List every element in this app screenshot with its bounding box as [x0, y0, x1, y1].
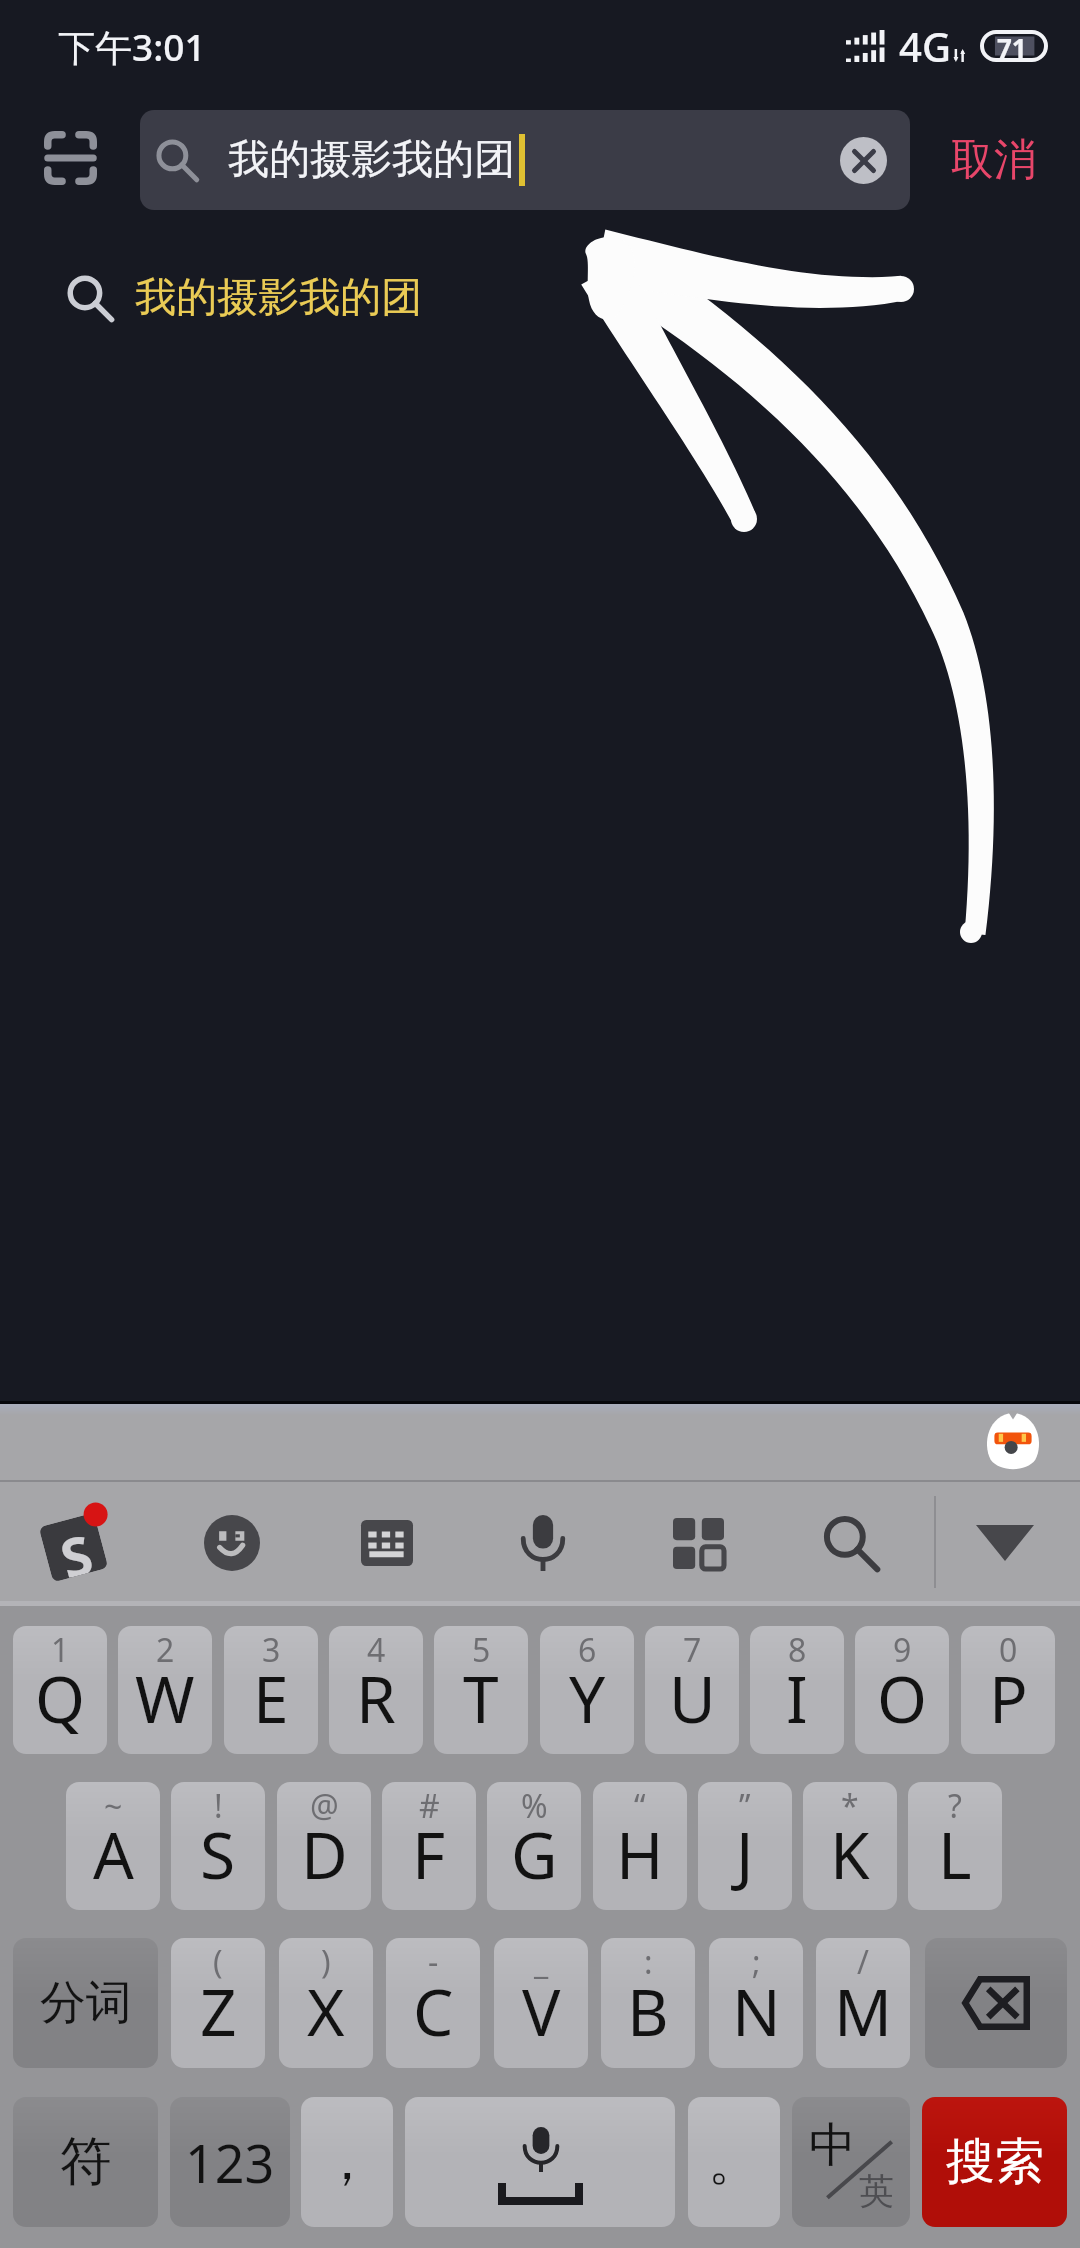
button[interactable]: Clear text — [840, 137, 887, 184]
staticText: 英 — [859, 2169, 894, 2213]
staticText: 5 — [472, 1628, 491, 1672]
button[interactable]: 7 — [645, 1626, 739, 1754]
button[interactable]: 。 — [688, 2097, 780, 2227]
button[interactable]: More tools — [638, 1483, 758, 1603]
staticText: S — [200, 1811, 236, 1898]
button[interactable]: ; — [709, 1938, 803, 2068]
button[interactable]: 搜索 — [922, 2097, 1067, 2227]
staticText: R — [356, 1655, 396, 1742]
button[interactable]: “ — [593, 1782, 687, 1910]
staticText: 123 — [185, 2127, 275, 2198]
button[interactable]: Voice assistant — [982, 1409, 1044, 1471]
staticText: K — [830, 1811, 870, 1898]
staticText: M — [834, 1968, 893, 2055]
button[interactable]: 3 — [224, 1626, 318, 1754]
staticText: D — [301, 1811, 348, 1898]
staticText: T — [463, 1655, 499, 1742]
staticText: X — [307, 1968, 345, 2055]
button[interactable]: 我的摄影我的团 — [0, 238, 1080, 358]
button[interactable]: _ — [494, 1938, 588, 2068]
staticText: 符 — [60, 2129, 112, 2195]
staticText: S — [52, 1516, 96, 1579]
staticText: 0 — [999, 1628, 1018, 1672]
staticText: @ — [310, 1784, 339, 1828]
staticText: : — [644, 1940, 653, 1984]
staticText: U — [669, 1655, 716, 1742]
button[interactable]: 我的摄影我的团 — [140, 110, 910, 210]
button[interactable]: ” — [698, 1782, 792, 1910]
button[interactable]: ? — [908, 1782, 1002, 1910]
staticText: P — [989, 1655, 1028, 1742]
staticText: 4G — [899, 19, 951, 73]
staticText: 取消 — [951, 133, 1037, 187]
staticText: 9 — [893, 1628, 912, 1672]
button[interactable]: * — [803, 1782, 897, 1910]
staticText: ” — [739, 1784, 751, 1828]
staticText: 7 — [683, 1628, 702, 1672]
staticText: _ — [534, 1940, 549, 1984]
button[interactable]: Scan QR code — [38, 126, 102, 190]
staticText: Y — [569, 1655, 606, 1742]
button[interactable]: - — [386, 1938, 480, 2068]
staticText: “ — [634, 1784, 646, 1828]
staticText: - — [428, 1940, 439, 1984]
button[interactable]: 6 — [540, 1626, 634, 1754]
button[interactable]: 5 — [434, 1626, 528, 1754]
button[interactable]: ) — [279, 1938, 373, 2068]
button[interactable]: 8 — [750, 1626, 844, 1754]
staticText: 1 — [51, 1628, 70, 1672]
button[interactable]: / — [816, 1938, 910, 2068]
staticText: E — [253, 1655, 289, 1742]
button[interactable]: : — [601, 1938, 695, 2068]
staticText: H — [616, 1811, 664, 1898]
staticText: / — [857, 1940, 869, 1984]
staticText: 中 — [809, 2116, 856, 2175]
button[interactable]: Keyboard layout — [327, 1483, 447, 1603]
staticText: F — [412, 1811, 446, 1898]
button[interactable]: ~ — [66, 1782, 160, 1910]
button[interactable]: % — [487, 1782, 581, 1910]
staticText: 2 — [156, 1628, 175, 1672]
button[interactable]: ， — [301, 2097, 393, 2227]
button[interactable]: Sogou input — [18, 1483, 138, 1603]
button[interactable]: 1 — [13, 1626, 107, 1754]
button[interactable]: 9 — [855, 1626, 949, 1754]
staticText: 我的摄影我的团 — [135, 272, 422, 324]
staticText: 6 — [578, 1628, 597, 1672]
button[interactable]: ! — [171, 1782, 265, 1910]
staticText: 3 — [262, 1628, 281, 1672]
button[interactable]: # — [382, 1782, 476, 1910]
staticText: ， — [321, 2129, 373, 2195]
button[interactable]: 2 — [118, 1626, 212, 1754]
staticText: ! — [214, 1784, 223, 1828]
button[interactable]: 123 — [170, 2097, 290, 2227]
staticText: 下午3:01 — [58, 21, 206, 72]
button[interactable]: Hide keyboard — [945, 1483, 1065, 1603]
button[interactable]: @ — [277, 1782, 371, 1910]
staticText: ) — [321, 1940, 331, 1984]
button[interactable]: 取消 — [928, 110, 1060, 210]
button[interactable]: 0 — [961, 1626, 1055, 1754]
staticText: W — [135, 1655, 195, 1742]
button[interactable]: Space — [405, 2097, 675, 2227]
button[interactable]: ( — [171, 1938, 265, 2068]
button[interactable]: 4 — [329, 1626, 423, 1754]
staticText: * — [841, 1784, 859, 1828]
staticText: C — [413, 1968, 454, 2055]
button[interactable]: Chinese English toggle — [792, 2097, 910, 2227]
staticText: 4 — [367, 1628, 386, 1672]
staticText: 搜索 — [946, 2131, 1044, 2193]
staticText: G — [511, 1811, 558, 1898]
button[interactable]: 符 — [13, 2097, 158, 2227]
staticText: V — [522, 1968, 561, 2055]
button[interactable]: Delete — [925, 1938, 1067, 2068]
button[interactable]: Search — [791, 1483, 911, 1603]
staticText: Q — [35, 1655, 85, 1742]
staticText: J — [736, 1811, 754, 1898]
button[interactable]: 分词 — [13, 1938, 158, 2068]
button[interactable]: Voice input — [483, 1483, 603, 1603]
button[interactable]: Emoji — [172, 1483, 292, 1603]
staticText: ~ — [104, 1784, 123, 1828]
staticText: L — [938, 1811, 972, 1898]
staticText: ? — [948, 1784, 962, 1828]
